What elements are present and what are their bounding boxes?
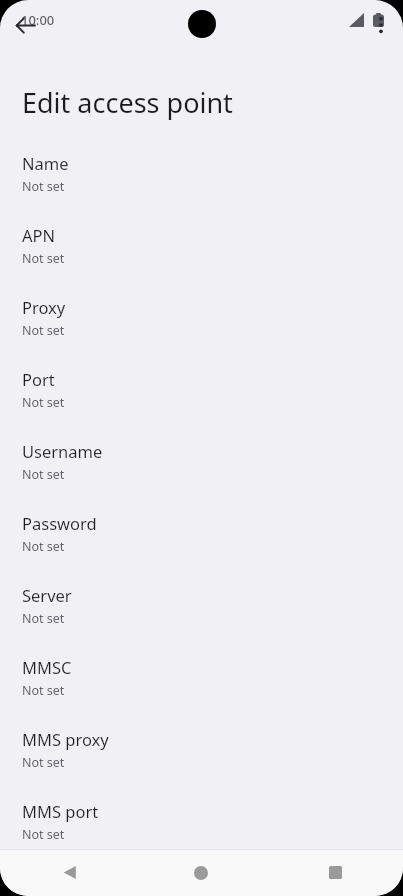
staticText: Password — [22, 512, 97, 534]
staticText: Port — [22, 368, 55, 390]
staticText: MMS proxy — [22, 728, 109, 750]
button[interactable]: Recent apps — [268, 849, 403, 896]
staticText: 10:00 — [21, 11, 55, 29]
staticText: Not set — [22, 538, 65, 555]
staticText: Edit access point — [22, 84, 233, 121]
staticText: Not set — [22, 322, 65, 339]
staticText: MMS port — [22, 800, 99, 822]
button[interactable]: Server — [0, 575, 403, 647]
button[interactable]: Name — [0, 143, 403, 215]
staticText: Not set — [22, 394, 65, 411]
button[interactable]: MMS proxy — [0, 719, 403, 791]
staticText: Server — [22, 584, 72, 606]
button[interactable]: Password — [0, 503, 403, 575]
staticText: MMSC — [22, 656, 72, 678]
button[interactable]: More options — [361, 5, 401, 45]
staticText: Not set — [22, 826, 65, 843]
button[interactable]: Back — [5, 5, 45, 45]
staticText: Not set — [22, 754, 65, 771]
staticText: Name — [22, 152, 69, 174]
button[interactable]: Proxy — [0, 287, 403, 359]
button[interactable]: MMSC — [0, 647, 403, 719]
staticText: Not set — [22, 466, 65, 483]
button[interactable]: APN — [0, 215, 403, 287]
staticText: APN — [22, 224, 56, 246]
staticText: Not set — [22, 250, 65, 267]
staticText: Not set — [22, 610, 65, 627]
button[interactable]: Username — [0, 431, 403, 503]
button[interactable]: Port — [0, 359, 403, 431]
button[interactable]: MMS port — [0, 791, 403, 863]
button[interactable]: Home — [134, 849, 268, 896]
staticText: Proxy — [22, 296, 66, 318]
staticText: Not set — [22, 682, 65, 699]
staticText: Username — [22, 440, 103, 462]
staticText: Not set — [22, 178, 65, 195]
button[interactable]: Back — [0, 849, 134, 896]
